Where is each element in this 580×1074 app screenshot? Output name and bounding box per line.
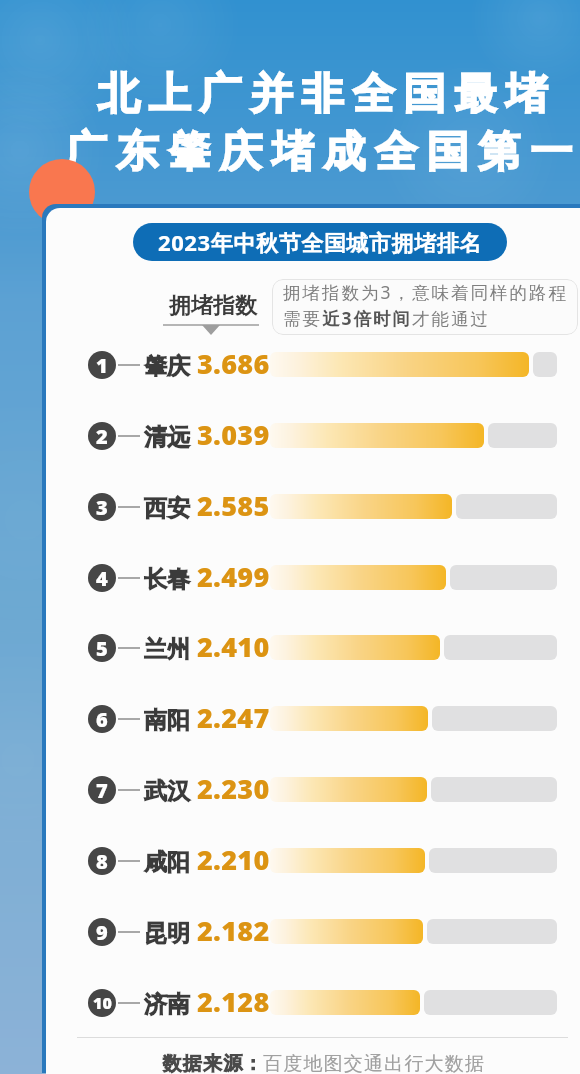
button[interactable]: 9 [46,908,580,956]
button[interactable]: 2 [46,412,580,460]
staticText: 长春 [144,565,190,594]
staticText: 清远 [144,423,190,452]
staticText: 2.128 [197,983,270,1020]
button[interactable]: 5 [46,624,580,672]
staticText: 数据来源： [162,1052,263,1074]
staticText: 1 [96,352,108,379]
button[interactable]: 10 [46,979,580,1027]
staticText: 2.585 [197,487,270,524]
staticText: 2.247 [197,699,270,736]
staticText: 兰州 [144,635,190,664]
staticText: 肇庆 [144,352,190,381]
staticText: 9 [96,919,108,946]
staticText: 8 [96,848,108,875]
staticText: 南阳 [144,706,190,735]
staticText: 昆明 [144,919,190,948]
button[interactable]: 4 [46,554,580,602]
staticText: 武汉 [144,777,190,806]
staticText: 7 [96,777,108,804]
staticText: 3.039 [197,416,270,453]
staticText: 2 [96,423,108,450]
staticText: 广东肇庆堵成全国第一 [60,126,577,179]
staticText: 拥堵指数为3，意味着同样的路程 需要近3倍时间才能通过 [283,280,569,331]
staticText: 2.230 [197,770,270,807]
button[interactable]: 1 [46,341,580,389]
staticText: 2.410 [197,628,270,665]
staticText: 3.686 [197,345,270,382]
staticText: 济南 [144,990,190,1019]
staticText: 6 [96,706,108,733]
staticText: 北上广并非全国最堵 [93,68,552,121]
staticText: 5 [96,635,108,662]
staticText: 百度地图交通出行大数据 [263,1052,486,1074]
staticText: 2.499 [197,558,270,595]
button[interactable]: 7 [46,766,580,814]
staticText: 10 [93,992,112,1014]
button[interactable]: 8 [46,837,580,885]
staticText: 3 [96,494,108,521]
button[interactable]: 6 [46,695,580,743]
button[interactable]: 2023年中秋节全国城市拥堵排名 [133,223,507,261]
staticText: 2023年中秋节全国城市拥堵排名 [158,227,482,257]
button[interactable]: 3 [46,483,580,531]
staticText: 拥堵指数 [169,292,257,320]
staticText: 4 [96,565,108,592]
staticText: 咸阳 [144,848,190,877]
staticText: 2.210 [197,841,270,878]
staticText: 西安 [144,494,190,523]
staticText: 2.182 [197,912,270,949]
